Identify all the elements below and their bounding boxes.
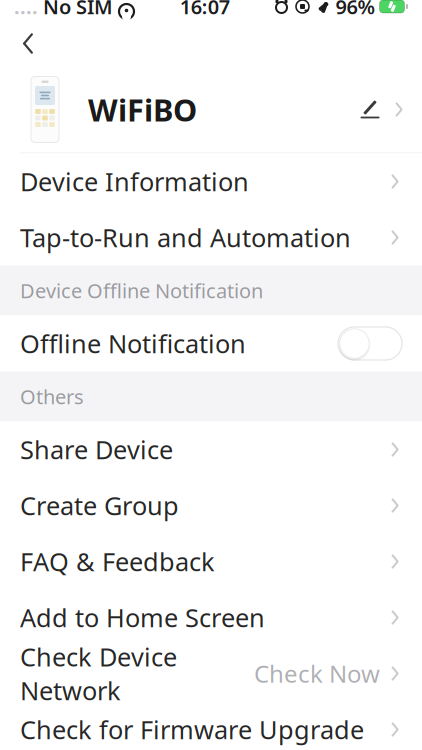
button[interactable]: Share Device [0, 421, 422, 477]
staticText: Check for Firmware Upgrade [20, 713, 364, 746]
button[interactable]: WiFiBO [0, 66, 422, 152]
staticText: 16:07 [180, 0, 230, 20]
staticText: Check Device Network [20, 640, 177, 707]
button[interactable]: Offline Notification [338, 327, 402, 360]
staticText: Device Offline Notification [20, 277, 263, 304]
staticText: Device Information [20, 165, 249, 198]
button[interactable]: Device Information [0, 153, 422, 209]
staticText: Share Device [20, 433, 173, 466]
staticText: Offline Notification [20, 327, 246, 360]
button[interactable]: Check Device Network [0, 645, 422, 701]
button[interactable]: FAQ & Feedback [0, 533, 422, 589]
staticText: Tap-to-Run and Automation [20, 221, 351, 254]
button[interactable]: Add to Home Screen [0, 589, 422, 645]
button[interactable]: Check for Firmware Upgrade [0, 701, 422, 750]
staticText: No SIM [38, 0, 118, 20]
staticText: WiFiBO [88, 89, 197, 130]
button[interactable]: Tap-to-Run and Automation [0, 209, 422, 265]
staticText: Others [20, 383, 84, 410]
staticText: 96% [335, 0, 375, 20]
staticText: Create Group [20, 489, 179, 522]
staticText: Add to Home Screen [20, 601, 265, 634]
button[interactable]: Create Group [0, 477, 422, 533]
staticText: FAQ & Feedback [20, 545, 215, 578]
staticText: .... [14, 0, 38, 20]
staticText: Check Now [254, 658, 380, 689]
button[interactable]: Back [4, 21, 52, 65]
